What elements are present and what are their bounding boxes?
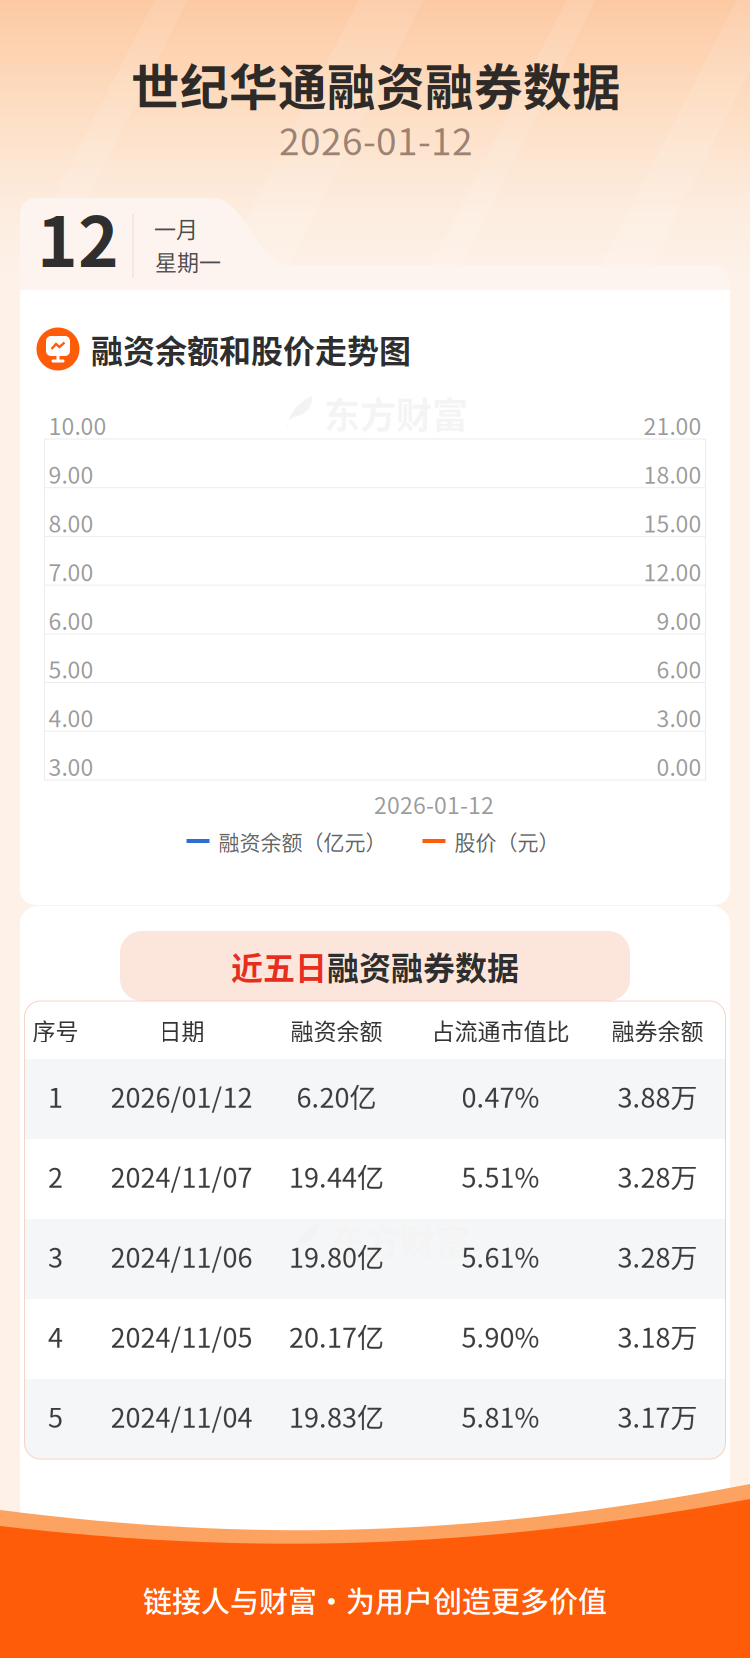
staticText: 融资余额 [290, 1013, 382, 1047]
staticText: 5 [48, 1396, 63, 1436]
staticText: 1 [48, 1076, 63, 1116]
staticText: 3.28万 [617, 1236, 697, 1276]
staticText: 12 [37, 187, 119, 287]
staticText: 7.00 [48, 554, 93, 588]
staticText: 20.17亿 [289, 1316, 384, 1356]
staticText: 4 [48, 1316, 63, 1356]
staticText: 日期 [158, 1013, 204, 1047]
staticText: 3.00 [48, 749, 93, 783]
staticText: 0.00 [656, 749, 701, 783]
staticText: 星期一 [155, 245, 221, 277]
staticText: 3.18万 [617, 1316, 697, 1356]
staticText: 3 [48, 1236, 63, 1276]
staticText: 21.00 [643, 408, 701, 442]
staticText: 世纪华通融资融券数据 [131, 49, 621, 119]
staticText: 4.00 [48, 701, 93, 734]
staticText: 6.00 [48, 603, 93, 636]
staticText: 9.00 [48, 457, 93, 490]
staticText: 6.20亿 [296, 1076, 376, 1116]
staticText: 2024/11/04 [110, 1396, 252, 1436]
staticText: 占流通市值比 [431, 1013, 569, 1047]
staticText: 3.17万 [617, 1396, 697, 1436]
staticText: 2 [48, 1156, 63, 1196]
staticText: 6.00 [656, 652, 701, 685]
staticText: 8.00 [48, 506, 93, 539]
staticText: 9.00 [656, 603, 701, 636]
staticText: 12.00 [643, 554, 701, 588]
staticText: 2024/11/07 [110, 1156, 252, 1196]
staticText: 东方财富 [330, 1215, 470, 1265]
staticText: 2026/01/12 [110, 1076, 252, 1116]
staticText: 19.80亿 [289, 1236, 384, 1276]
staticText: 近五日 [231, 943, 327, 989]
staticText: 3.88万 [617, 1076, 697, 1116]
staticText: 2024/11/06 [110, 1236, 252, 1276]
staticText: 0.47% [461, 1076, 539, 1116]
staticText: 18.00 [643, 457, 701, 490]
staticText: 5.90% [461, 1316, 539, 1356]
staticText: 融券余额 [611, 1013, 703, 1047]
staticText: 10.00 [48, 408, 106, 442]
staticText: 序号 [32, 1013, 78, 1047]
staticText: 融资余额和股价走势图 [91, 326, 411, 372]
staticText: 15.00 [643, 506, 701, 539]
staticText: 19.83亿 [289, 1396, 384, 1436]
staticText: 3.28万 [617, 1156, 697, 1196]
staticText: 链接人与财富·为用户创造更多价值 [143, 1579, 607, 1621]
staticText: 19.44亿 [289, 1156, 384, 1196]
staticText: 东方财富 [324, 387, 468, 439]
staticText: 融资余额（亿元） [218, 826, 386, 856]
staticText: 5.81% [461, 1396, 539, 1436]
staticText: 2026-01-12 [374, 787, 494, 821]
staticText: 5.00 [48, 652, 93, 685]
staticText: 5.61% [461, 1236, 539, 1276]
staticText: 融资融券数据 [327, 943, 519, 989]
staticText: 5.51% [461, 1156, 539, 1196]
staticText: 股价（元） [454, 826, 559, 856]
staticText: 一月 [154, 212, 198, 244]
staticText: 2024/11/05 [110, 1316, 252, 1356]
staticText: 3.00 [656, 701, 701, 734]
staticText: 2026-01-12 [279, 112, 473, 166]
